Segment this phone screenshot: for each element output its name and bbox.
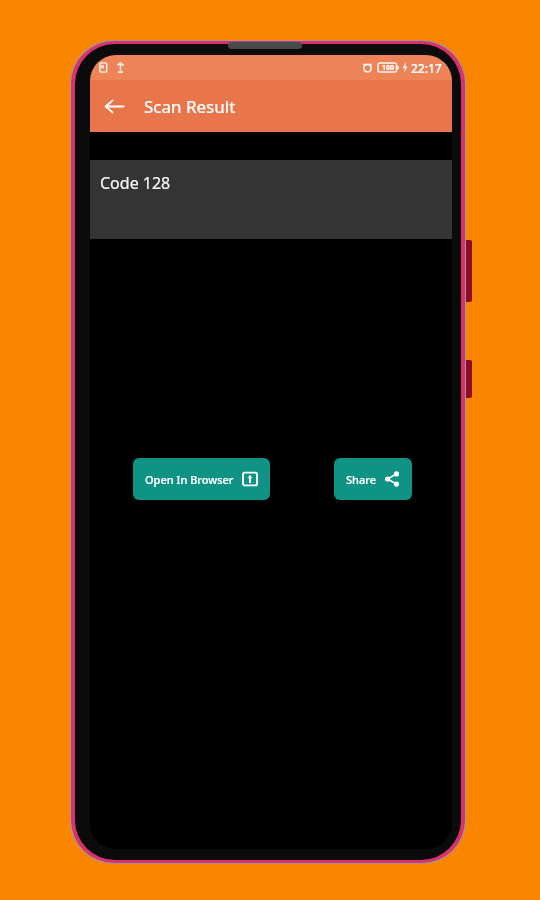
staticText: Scan Result	[144, 95, 236, 118]
button[interactable]: Code 128	[90, 160, 452, 239]
staticText: Share	[346, 472, 376, 487]
staticText: Code 128	[100, 172, 171, 194]
staticText: 100	[382, 63, 395, 73]
staticText: Open In Browser	[145, 472, 234, 487]
button[interactable]: Share	[334, 458, 412, 500]
button[interactable]: Back	[90, 82, 138, 130]
staticText: 22:17	[411, 60, 442, 76]
button[interactable]: Open In Browser	[133, 458, 270, 500]
